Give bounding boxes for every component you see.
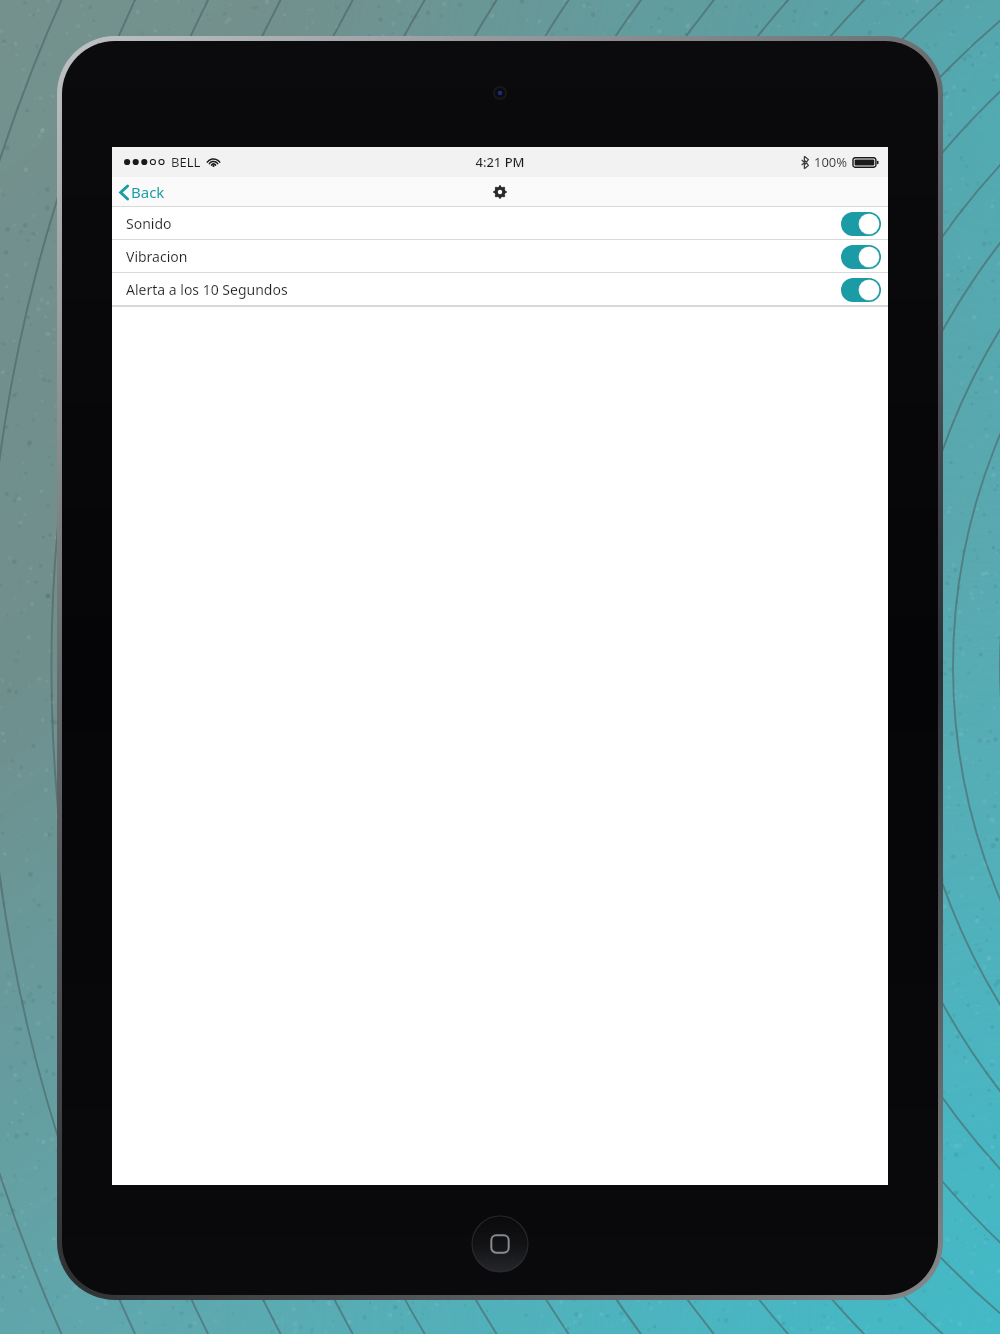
button[interactable]: Alerta a los 10 Segundos <box>112 273 888 306</box>
button[interactable]: Back <box>118 182 165 202</box>
button[interactable]: Sonido <box>112 207 888 240</box>
button[interactable]: Vibracion toggle, on <box>841 245 881 269</box>
staticText: Alerta a los 10 Segundos <box>126 280 288 299</box>
button[interactable]: Home <box>472 1216 528 1272</box>
staticText: 100% <box>814 153 848 171</box>
button[interactable]: Settings <box>490 182 510 202</box>
button[interactable]: Vibracion <box>112 240 888 273</box>
staticText: Back <box>131 182 165 202</box>
staticText: Vibracion <box>126 247 188 266</box>
button[interactable]: Alerta a los 10 Segundos toggle, on <box>841 278 881 302</box>
button[interactable]: Sonido toggle, on <box>841 212 881 236</box>
staticText: BELL <box>171 153 201 171</box>
staticText: Sonido <box>126 214 172 233</box>
staticText: 4:21 PM <box>475 153 525 171</box>
